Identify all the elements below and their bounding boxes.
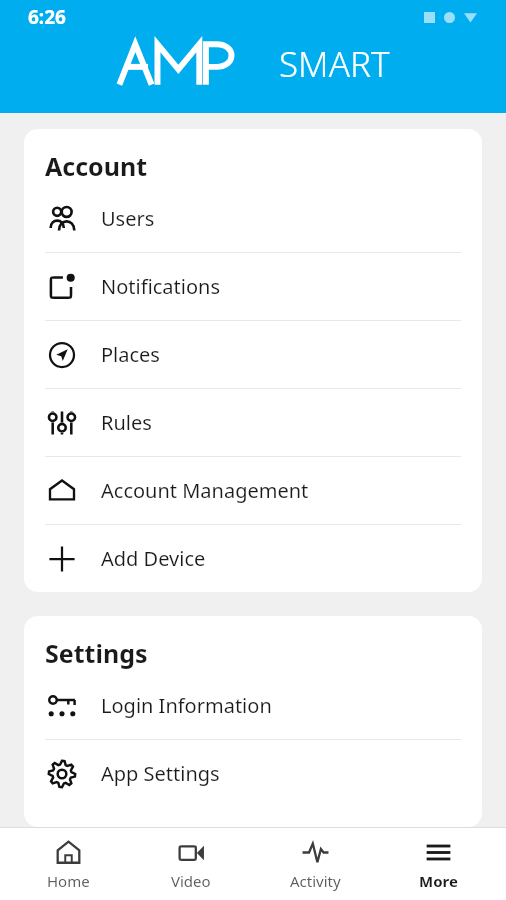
staticText: Places [101, 341, 160, 368]
other: Home [55, 839, 82, 866]
staticText: Account Management [101, 477, 309, 504]
button[interactable]: Account Management [24, 457, 482, 525]
staticText: Activity [290, 871, 341, 891]
button[interactable]: Users [24, 185, 482, 253]
button[interactable]: Activity [260, 828, 370, 900]
button[interactable]: Notifications [24, 253, 482, 321]
button[interactable]: Home [13, 828, 123, 900]
staticText: Notifications [101, 273, 220, 300]
staticText: Video [171, 871, 211, 891]
staticText: Add Device [101, 545, 206, 572]
staticText: More [419, 871, 458, 891]
other: More [425, 839, 452, 866]
other: Video [178, 839, 205, 866]
staticText: App Settings [101, 760, 220, 787]
staticText: Account [45, 149, 148, 183]
button[interactable]: Login Information [24, 672, 482, 740]
staticText: Users [101, 205, 155, 232]
button[interactable]: App Settings [24, 740, 482, 807]
staticText: SMART [279, 40, 390, 88]
button[interactable]: Add Device [24, 525, 482, 592]
staticText: 6:26 [28, 4, 66, 30]
staticText: Settings [45, 636, 148, 670]
staticText: Login Information [101, 692, 272, 719]
button[interactable]: Places [24, 321, 482, 389]
other: Activity [302, 839, 329, 866]
button[interactable]: Rules [24, 389, 482, 457]
staticText: Home [47, 871, 90, 891]
button[interactable]: Video [136, 828, 246, 900]
staticText: Rules [101, 409, 152, 436]
button[interactable]: More [383, 828, 493, 900]
